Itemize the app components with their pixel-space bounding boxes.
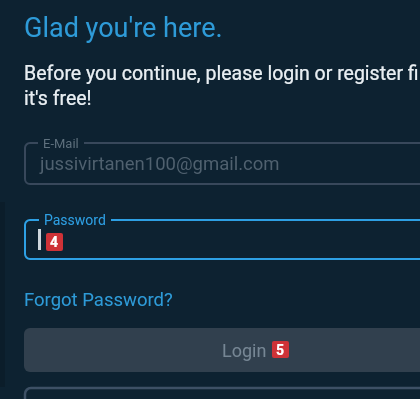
staticText: Glad you're here. bbox=[24, 12, 223, 44]
staticText: Password bbox=[44, 212, 106, 228]
staticText: 4 bbox=[50, 234, 59, 250]
staticText: jussivirtanen100@gmail.com bbox=[40, 153, 280, 175]
staticText: E-Mail bbox=[43, 136, 79, 151]
staticText: Forgot Password? bbox=[24, 289, 173, 311]
button[interactable]: Forgot Password? bbox=[24, 289, 173, 311]
staticText: Before you continue, please login or reg… bbox=[24, 62, 420, 110]
staticText: 5 bbox=[276, 342, 285, 358]
button[interactable] bbox=[24, 142, 420, 185]
staticText: Login bbox=[222, 340, 267, 361]
button[interactable] bbox=[24, 328, 420, 372]
button[interactable] bbox=[24, 219, 420, 260]
